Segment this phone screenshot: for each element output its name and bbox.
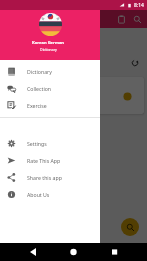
button[interactable]: Favorite xyxy=(120,89,134,103)
button[interactable]: About Us xyxy=(0,186,100,203)
staticText: Dictionary xyxy=(40,47,57,52)
staticText: Exercise xyxy=(27,102,47,109)
button[interactable] xyxy=(0,0,147,261)
staticText: Rate This App xyxy=(27,157,61,164)
button[interactable]: Rate This App xyxy=(0,152,100,169)
button[interactable]: Settings xyxy=(0,135,100,152)
button[interactable]: Refresh xyxy=(128,56,142,70)
button[interactable]: Dictionary xyxy=(0,63,100,80)
button[interactable]: Share this app xyxy=(0,169,100,186)
button[interactable]: Favorite xyxy=(3,77,144,114)
staticText: 8:14 xyxy=(134,2,144,9)
staticText: Share this app xyxy=(27,174,62,181)
button[interactable]: Collection xyxy=(0,80,100,97)
staticText: Collection xyxy=(27,85,52,92)
button[interactable]: Exercise xyxy=(0,97,100,114)
button[interactable]: Search xyxy=(121,218,139,236)
button[interactable]: Clipboard xyxy=(113,11,129,27)
staticText: About Us xyxy=(27,191,50,198)
button[interactable]: Search xyxy=(129,11,145,27)
staticText: Settings xyxy=(27,140,47,147)
staticText: Korean German xyxy=(32,40,64,46)
staticText: Dictionary xyxy=(27,68,52,75)
